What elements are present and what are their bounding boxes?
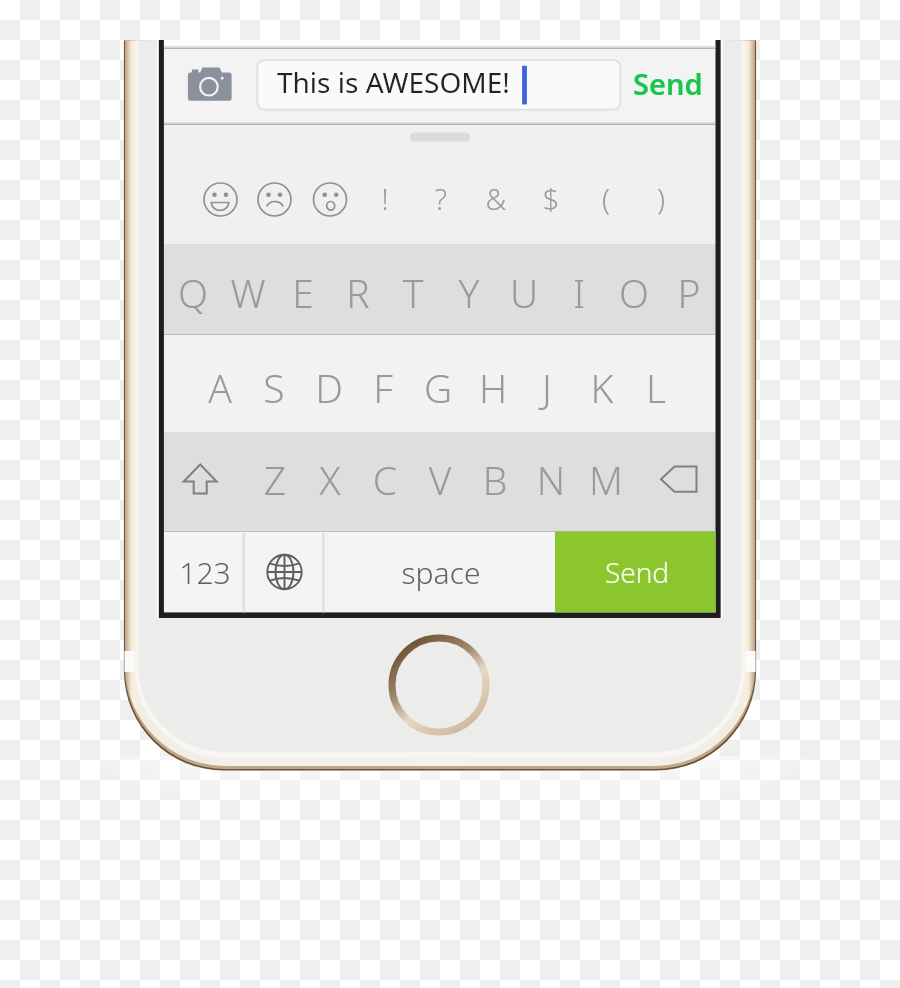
button[interactable]: X xyxy=(303,432,358,531)
button[interactable]: Sad face xyxy=(256,181,293,218)
staticText: B xyxy=(460,453,530,506)
staticText: Send xyxy=(633,64,703,103)
staticText: G xyxy=(403,361,473,414)
button[interactable]: T xyxy=(386,244,441,335)
staticText: E xyxy=(268,266,338,319)
staticText: 123 xyxy=(160,552,250,593)
button[interactable]: K xyxy=(575,335,629,432)
staticText: Send xyxy=(557,553,717,591)
button[interactable]: U xyxy=(496,244,551,335)
button[interactable]: Surprised face xyxy=(312,181,349,218)
button[interactable]: ! xyxy=(363,177,407,221)
button[interactable]: G xyxy=(411,335,465,432)
button[interactable]: & xyxy=(474,177,518,221)
button[interactable]: O xyxy=(606,244,661,335)
staticText: Y xyxy=(434,266,504,319)
staticText: D xyxy=(294,361,364,414)
button[interactable]: Switch keyboard language xyxy=(244,531,324,612)
staticText: Q xyxy=(158,266,228,319)
staticText: J xyxy=(512,361,582,414)
button[interactable]: S xyxy=(247,335,301,432)
button[interactable]: V xyxy=(413,432,468,531)
staticText: I xyxy=(544,266,614,319)
button[interactable]: N xyxy=(523,432,578,531)
button[interactable]: C xyxy=(358,432,413,531)
staticText: & xyxy=(466,179,526,218)
staticText: M xyxy=(571,453,641,506)
button[interactable]: Y xyxy=(441,244,496,335)
button[interactable]: A xyxy=(193,335,247,432)
button[interactable]: M xyxy=(578,432,633,531)
button[interactable]: ( xyxy=(584,177,628,221)
button[interactable]: L xyxy=(629,335,683,432)
button[interactable]: I xyxy=(551,244,606,335)
staticText: L xyxy=(621,361,691,414)
button[interactable]: Backspace xyxy=(640,432,715,531)
staticText: A xyxy=(185,361,255,414)
staticText: $ xyxy=(521,179,581,218)
button[interactable]: J xyxy=(520,335,574,432)
button[interactable]: Send message xyxy=(626,56,712,114)
staticText: Z xyxy=(240,453,310,506)
button[interactable]: D xyxy=(302,335,356,432)
staticText: F xyxy=(348,361,418,414)
button[interactable]: Home xyxy=(390,636,488,734)
staticText: T xyxy=(378,266,448,319)
staticText: space xyxy=(361,552,521,593)
staticText: ) xyxy=(631,179,691,218)
staticText: S xyxy=(239,361,309,414)
staticText: C xyxy=(350,453,420,506)
staticText: ( xyxy=(576,179,636,218)
button[interactable]: Numbers and symbols xyxy=(164,531,244,612)
staticText: K xyxy=(567,361,637,414)
button[interactable]: ) xyxy=(639,177,683,221)
button[interactable]: B xyxy=(468,432,523,531)
button[interactable]: Z xyxy=(248,432,303,531)
button[interactable]: Q xyxy=(166,244,221,335)
staticText: U xyxy=(489,266,559,319)
button[interactable]: P xyxy=(661,244,716,335)
button[interactable]: R xyxy=(331,244,386,335)
staticText: W xyxy=(213,266,283,319)
button[interactable]: H xyxy=(466,335,520,432)
button[interactable]: F xyxy=(356,335,410,432)
staticText: ? xyxy=(411,179,471,218)
button[interactable]: W xyxy=(221,244,276,335)
staticText: P xyxy=(654,266,724,319)
staticText: O xyxy=(599,266,669,319)
button[interactable]: E xyxy=(276,244,331,335)
staticText: R xyxy=(323,266,393,319)
button[interactable]: Send xyxy=(555,531,716,612)
staticText: V xyxy=(405,453,475,506)
button[interactable]: space xyxy=(323,531,555,612)
button[interactable]: ? xyxy=(419,177,463,221)
button[interactable]: $ xyxy=(529,177,573,221)
button[interactable]: Message input: This is AWESOME! xyxy=(257,60,620,109)
staticText: H xyxy=(458,361,528,414)
staticText: N xyxy=(516,453,586,506)
staticText: This is AWESOME! xyxy=(277,63,510,101)
button[interactable]: Grinning face xyxy=(202,181,239,218)
button[interactable]: Take photo xyxy=(180,60,240,112)
staticText: X xyxy=(295,453,365,506)
staticText: ! xyxy=(355,179,415,218)
button[interactable]: Shift xyxy=(164,432,239,531)
